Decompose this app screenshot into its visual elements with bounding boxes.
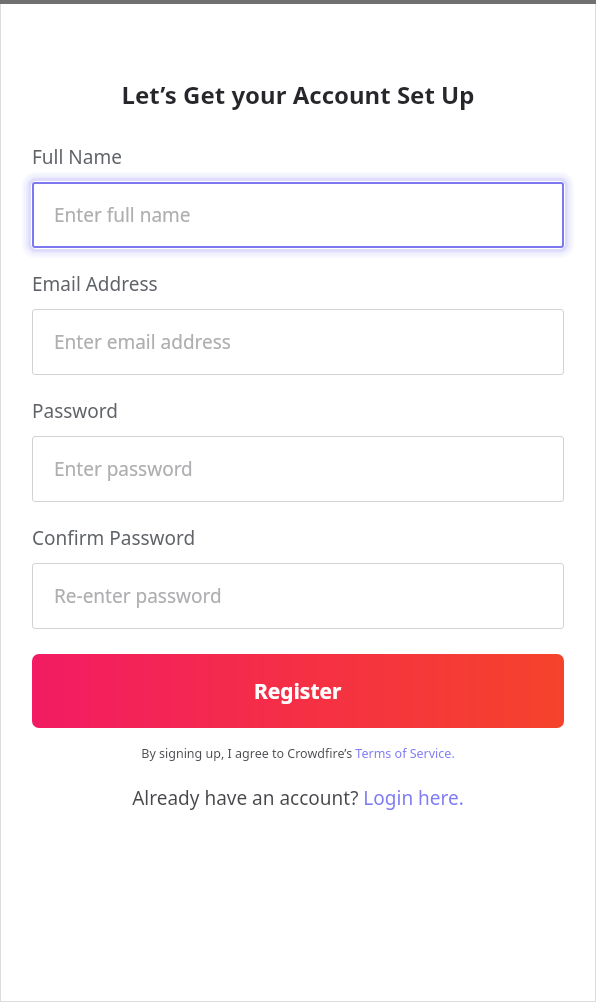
staticText: Register (254, 677, 342, 706)
button[interactable]: Enter full name (32, 182, 564, 248)
staticText: Password (32, 398, 118, 424)
button[interactable]: Enter email address (32, 309, 564, 375)
button[interactable]: Enter password (32, 436, 564, 502)
staticText: By signing up, I agree to Crowdfire’s Te… (141, 745, 455, 762)
button[interactable]: Re-enter password (32, 563, 564, 629)
staticText: Already have an account? Login here. (132, 785, 464, 811)
staticText: Let’s Get your Account Set Up (31, 78, 565, 111)
staticText: Confirm Password (32, 525, 196, 551)
button[interactable]: Already have an account? Login here. (32, 785, 564, 811)
staticText: Enter full name (54, 202, 191, 228)
button[interactable]: By signing up, I agree to Crowdfire’s Te… (32, 745, 564, 762)
staticText: Enter password (54, 456, 193, 482)
button[interactable]: Register (32, 654, 564, 728)
staticText: Email Address (32, 271, 158, 297)
staticText: Enter email address (54, 329, 231, 355)
staticText: Full Name (32, 144, 122, 170)
staticText: Re-enter password (54, 583, 222, 609)
